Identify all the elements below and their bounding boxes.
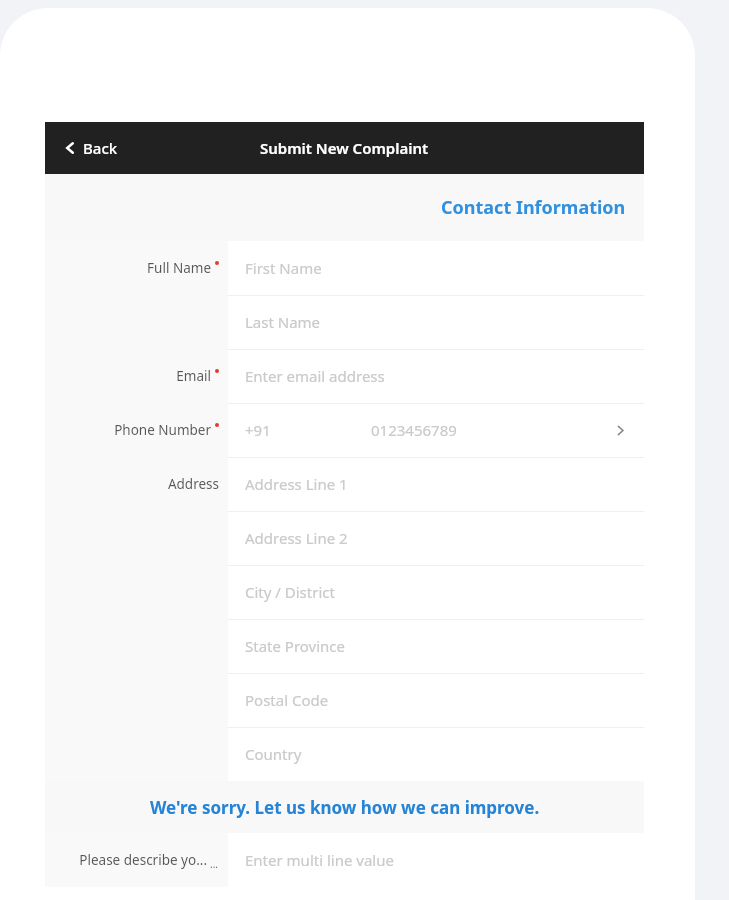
button[interactable]: Email	[45, 349, 644, 403]
button[interactable]: Full Name	[45, 241, 644, 295]
staticText: Full Name	[147, 259, 211, 277]
staticText: Address	[167, 475, 219, 493]
staticText: Enter multi line value	[245, 850, 394, 870]
staticText: We're sorry. Let us know how we can impr…	[150, 796, 540, 819]
staticText: Contact Information	[441, 195, 626, 220]
button[interactable]: Please describe yo...	[45, 833, 644, 887]
staticText: 0123456789	[371, 420, 457, 440]
staticText: ...	[210, 857, 219, 871]
button[interactable]: Last Name	[45, 295, 644, 349]
staticText: Phone Number	[114, 421, 211, 439]
staticText: Enter email address	[245, 366, 385, 386]
button[interactable]: Country	[45, 727, 644, 781]
button[interactable]: State Province	[45, 619, 644, 673]
staticText: Email	[176, 367, 211, 385]
staticText: State Province	[245, 636, 346, 656]
button[interactable]: Phone Number	[45, 403, 644, 457]
button[interactable]: Back	[57, 130, 124, 166]
staticText: +91	[245, 420, 271, 440]
staticText: Address Line 2	[245, 528, 348, 548]
staticText: First Name	[245, 258, 322, 278]
button[interactable]: City / District	[45, 565, 644, 619]
staticText: Back	[83, 138, 118, 158]
staticText: Postal Code	[245, 690, 329, 710]
other: Select country code	[610, 420, 630, 440]
staticText: City / District	[245, 582, 335, 602]
staticText: Last Name	[245, 312, 321, 332]
staticText: Submit New Complaint	[260, 138, 429, 158]
staticText: Address Line 1	[245, 474, 348, 494]
staticText: Please describe yo...	[79, 851, 207, 869]
staticText: Country	[245, 744, 302, 764]
button[interactable]: Address Line 2	[45, 511, 644, 565]
button[interactable]: Postal Code	[45, 673, 644, 727]
button[interactable]: Address	[45, 457, 644, 511]
